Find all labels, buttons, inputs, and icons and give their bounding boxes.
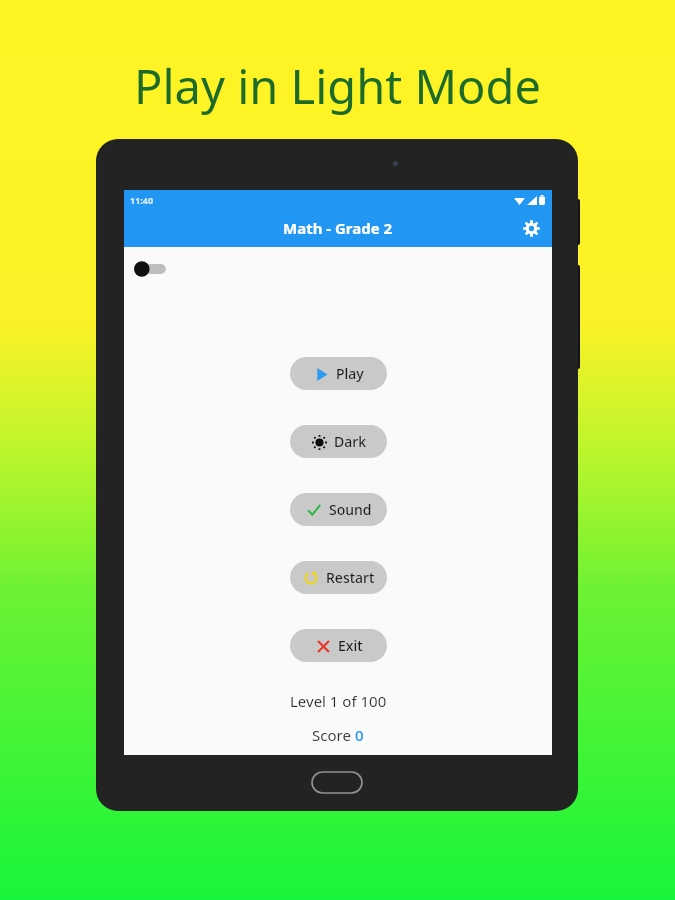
button[interactable]: Play: [290, 357, 387, 390]
button[interactable]: Settings: [516, 213, 546, 243]
staticText: Exit: [338, 636, 363, 655]
staticText: Dark: [334, 432, 366, 451]
button[interactable]: Dark: [290, 425, 387, 458]
staticText: Math - Grade 2: [283, 218, 393, 238]
button[interactable]: Restart: [290, 561, 387, 594]
staticText: Sound: [329, 500, 372, 519]
button[interactable]: Exit: [290, 629, 387, 662]
button[interactable]: Sound: [290, 493, 387, 526]
staticText: Play in Light Mode: [0, 54, 675, 118]
staticText: Level 1 of 100: [290, 691, 387, 711]
staticText: Play: [336, 364, 364, 383]
staticText: Restart: [326, 568, 375, 587]
button[interactable]: Toggle dark mode: [133, 259, 169, 279]
staticText: 11:40: [130, 194, 154, 206]
staticText: 0: [355, 725, 364, 745]
staticText: Score: [312, 725, 355, 745]
